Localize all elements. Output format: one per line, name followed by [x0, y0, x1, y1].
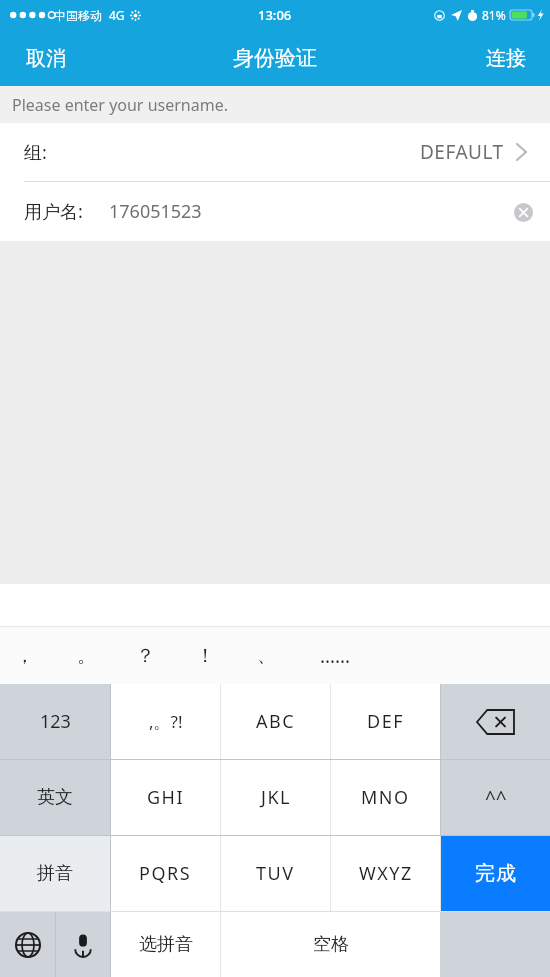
staticText: PQRS	[139, 861, 192, 886]
button[interactable]: ！	[182, 627, 228, 684]
button[interactable]: 连接	[462, 30, 550, 86]
button[interactable]: 、	[243, 627, 289, 684]
button[interactable]: JKL	[221, 760, 330, 835]
button[interactable]: 拼音	[0, 836, 110, 911]
button[interactable]: 123	[0, 684, 110, 759]
button[interactable]: 英文	[0, 760, 110, 835]
button[interactable]: Clear text	[506, 195, 540, 229]
staticText: 空格	[313, 933, 349, 956]
button[interactable]: 。	[63, 627, 109, 684]
staticText: 用户名:	[24, 199, 83, 224]
staticText: ！	[196, 644, 215, 668]
staticText: MNO	[361, 785, 410, 810]
staticText: DEFAULT	[420, 139, 504, 165]
button[interactable]: ，	[1, 627, 47, 684]
staticText: ……	[320, 643, 351, 669]
staticText: GHI	[147, 785, 185, 810]
button[interactable]: ……	[312, 627, 358, 684]
staticText: WXYZ	[359, 861, 413, 886]
button[interactable]: 选拼音	[111, 912, 220, 977]
staticText: 选拼音	[139, 933, 193, 956]
button[interactable]: DEF	[331, 684, 440, 759]
staticText: 123	[40, 709, 71, 734]
staticText: ABC	[256, 709, 296, 734]
staticText: ，	[15, 644, 34, 668]
staticText: JKL	[261, 785, 291, 810]
staticText: 176051523	[109, 199, 202, 224]
staticText: 身份验证	[233, 45, 317, 71]
staticText: ？	[136, 644, 155, 668]
button[interactable]: ^^	[441, 760, 550, 835]
button[interactable]: 用户名:	[0, 182, 550, 241]
staticText: 完成	[474, 861, 517, 886]
button[interactable]: ABC	[221, 684, 330, 759]
staticText: DEF	[367, 709, 404, 734]
staticText: 。	[77, 644, 96, 668]
button[interactable]: PQRS	[111, 836, 220, 911]
button[interactable]: 完成	[441, 836, 550, 911]
button[interactable]: TUV	[221, 836, 330, 911]
button[interactable]: ？	[122, 627, 168, 684]
staticText: 中国移动	[54, 8, 102, 23]
button[interactable]: 取消	[0, 30, 92, 86]
button[interactable]: MNO	[331, 760, 440, 835]
staticText: 取消	[26, 46, 66, 71]
button[interactable]: GHI	[111, 760, 220, 835]
button[interactable]: 空格	[221, 912, 440, 977]
staticText: 81%	[482, 7, 506, 23]
staticText: 组:	[24, 140, 47, 165]
staticText: ^^	[485, 785, 507, 811]
staticText: 拼音	[37, 862, 73, 885]
staticText: TUV	[256, 861, 295, 886]
staticText: 4G	[109, 7, 125, 23]
button[interactable]: ,。?!	[111, 684, 220, 759]
staticText: ,。?!	[149, 710, 183, 733]
staticText: Please enter your username.	[12, 94, 228, 116]
staticText: 英文	[37, 786, 73, 809]
button[interactable]: WXYZ	[331, 836, 440, 911]
staticText: 、	[257, 644, 276, 668]
staticText: 13:06	[258, 6, 292, 24]
button[interactable]: Voice input	[56, 912, 110, 977]
staticText: 连接	[486, 46, 526, 71]
button[interactable]: Backspace	[441, 684, 550, 759]
button[interactable]: 组:	[0, 123, 550, 181]
button[interactable]: Switch keyboard	[0, 912, 55, 977]
